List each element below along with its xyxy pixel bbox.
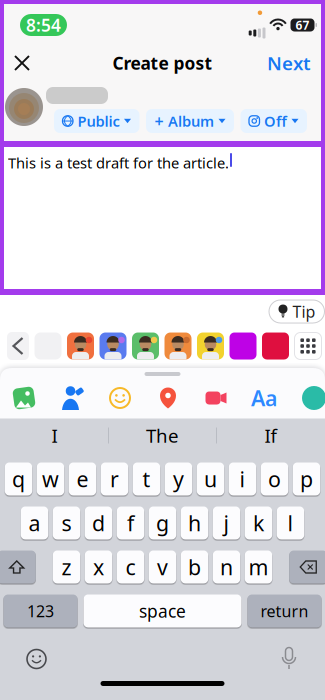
staticText: b [188, 553, 201, 581]
staticText: w [42, 465, 59, 493]
staticText: Create post [112, 51, 212, 74]
staticText: q [12, 465, 25, 493]
button[interactable]: d [85, 506, 112, 539]
staticText: Off [264, 111, 287, 131]
staticText: + [154, 110, 163, 132]
button[interactable]: return [247, 594, 321, 627]
button[interactable]: u [197, 462, 224, 495]
button[interactable]: Avatar sticker 2 [99, 332, 126, 359]
button[interactable]: l [277, 506, 304, 539]
button[interactable]: Shift [0, 550, 36, 583]
button[interactable]: Check in [144, 381, 192, 415]
button[interactable]: Red background [262, 332, 289, 359]
button[interactable]: v [149, 550, 176, 583]
button[interactable]: Blank sticker [34, 332, 61, 359]
button[interactable]: Dictate [282, 647, 325, 671]
button[interactable]: Feeling or activity [96, 381, 144, 415]
button[interactable]: The [109, 423, 216, 448]
staticText: y [173, 465, 184, 493]
button[interactable]: m [245, 550, 272, 583]
staticText: r [110, 465, 119, 493]
staticText: space [139, 599, 186, 622]
button[interactable]: t [133, 462, 160, 495]
button[interactable]: i [229, 462, 256, 495]
staticText: 123 [27, 600, 54, 622]
button[interactable]: Close [0, 43, 44, 83]
button[interactable]: Avatar sticker 3 [132, 332, 159, 359]
staticText: k [253, 509, 264, 537]
button[interactable]: w [37, 462, 64, 495]
button[interactable]: q [5, 462, 32, 495]
button[interactable]: If [217, 423, 324, 448]
button[interactable]: f [117, 506, 144, 539]
button[interactable]: n [213, 550, 240, 583]
button[interactable]: More backgrounds [294, 332, 321, 359]
staticText: v [157, 553, 168, 581]
button[interactable]: space [83, 594, 241, 627]
button[interactable]: o [261, 462, 288, 495]
staticText: c [125, 553, 135, 581]
button[interactable]: Next [253, 43, 325, 83]
staticText: o [268, 465, 281, 493]
staticText: h [188, 509, 201, 537]
button[interactable]: Tip [269, 300, 324, 323]
staticText: x [93, 553, 104, 581]
button[interactable]: Live video [192, 381, 240, 415]
button[interactable]: Back [7, 332, 29, 360]
button[interactable]: y [165, 462, 192, 495]
button[interactable]: Public [54, 109, 139, 133]
staticText: p [300, 465, 313, 493]
button[interactable]: x [85, 550, 112, 583]
button[interactable]: Purple background [229, 332, 256, 359]
button[interactable]: p [293, 462, 320, 495]
button[interactable]: Avatar sticker 1 [67, 332, 94, 359]
button[interactable]: Tag people [48, 381, 96, 415]
button[interactable]: z [53, 550, 80, 583]
button[interactable]: 123 [3, 594, 77, 627]
button[interactable]: g [149, 506, 176, 539]
staticText: j [223, 509, 229, 537]
staticText: Album [168, 111, 214, 131]
button[interactable]: r [101, 462, 128, 495]
staticText: This is a test draft for the article. [8, 153, 229, 172]
staticText: d [92, 509, 105, 537]
staticText: m [248, 553, 268, 581]
staticText: a [28, 509, 40, 537]
staticText: f [127, 509, 134, 537]
staticText: I [51, 423, 57, 448]
staticText: return [260, 600, 308, 622]
staticText: Next [267, 51, 311, 75]
button[interactable]: Avatar sticker 4 [164, 332, 191, 359]
staticText: e [76, 465, 88, 493]
staticText: z [61, 553, 71, 581]
button[interactable]: + [146, 109, 234, 133]
button[interactable]: k [245, 506, 272, 539]
button[interactable]: Music [288, 381, 325, 415]
staticText: Public [77, 111, 119, 131]
staticText: s [61, 509, 71, 537]
button[interactable]: I [1, 423, 108, 448]
button[interactable]: Emoji [0, 649, 46, 668]
button[interactable]: b [181, 550, 208, 583]
button[interactable]: Text style [240, 381, 288, 415]
button[interactable]: e [69, 462, 96, 495]
staticText: The [146, 423, 179, 448]
staticText: n [220, 553, 233, 581]
staticText: 67 [295, 17, 309, 33]
staticText: Aa [251, 384, 277, 412]
button[interactable]: s [53, 506, 80, 539]
button[interactable]: h [181, 506, 208, 539]
staticText: t [142, 465, 150, 493]
button[interactable]: c [117, 550, 144, 583]
staticText: i [239, 465, 245, 493]
button[interactable]: Avatar sticker 5 [197, 332, 224, 359]
staticText: u [204, 465, 217, 493]
button[interactable]: Off [240, 109, 307, 133]
button[interactable]: j [213, 506, 240, 539]
staticText: 8:54 [26, 13, 61, 36]
button[interactable]: Photo or video [0, 381, 48, 415]
button[interactable]: Delete [289, 550, 325, 583]
staticText: l [287, 509, 293, 537]
staticText: Tip [292, 301, 315, 322]
button[interactable]: a [21, 506, 48, 539]
